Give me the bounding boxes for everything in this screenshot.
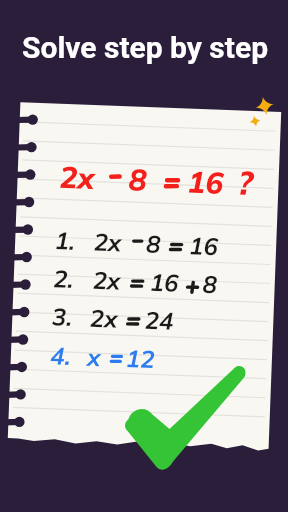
- button[interactable]: [0, 0, 288, 512]
